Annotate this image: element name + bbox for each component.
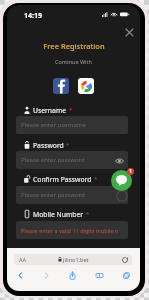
button[interactable]: Please enter password: [16, 151, 128, 169]
button[interactable]: Bookmarks: [86, 269, 113, 281]
staticText: AA: [19, 256, 27, 263]
staticText: jilino1.bet: [63, 256, 89, 263]
button[interactable]: AA: [14, 254, 132, 265]
staticText: Mobile Number: [33, 210, 84, 219]
button[interactable]: Show password: [114, 155, 125, 166]
staticText: Free Registration: [43, 41, 105, 51]
button[interactable]: Share: [59, 269, 86, 281]
staticText: *: [69, 106, 73, 114]
staticText: Confirm Password: [33, 175, 92, 184]
button[interactable]: Please enter a valid 11 digits mobile n: [16, 221, 128, 239]
button[interactable]: Tabs: [113, 269, 140, 281]
button[interactable]: Continue with Google: [78, 78, 94, 94]
button[interactable]: Forward: [33, 269, 59, 281]
button[interactable]: Please enter username: [16, 116, 128, 134]
staticText: *: [94, 175, 98, 183]
staticText: Password: [33, 141, 64, 150]
staticText: 14:19: [24, 11, 42, 21]
button[interactable]: Close: [123, 26, 136, 39]
button[interactable]: Chat support: [111, 170, 132, 191]
staticText: Username: [33, 106, 67, 115]
staticText: *: [86, 210, 90, 218]
button[interactable]: Reload: [121, 256, 129, 264]
staticText: Continue With: [55, 58, 92, 65]
button[interactable]: Back: [7, 269, 33, 281]
staticText: *: [66, 141, 70, 149]
button[interactable]: Please enter password: [16, 186, 128, 204]
staticText: Please enter password: [21, 156, 85, 164]
staticText: Please enter password: [21, 191, 85, 199]
staticText: 1: [129, 168, 132, 175]
button[interactable]: Continue with Facebook: [53, 78, 69, 94]
staticText: Please enter username: [21, 121, 86, 129]
staticText: Please enter a valid 11 digits mobile n: [21, 227, 119, 234]
